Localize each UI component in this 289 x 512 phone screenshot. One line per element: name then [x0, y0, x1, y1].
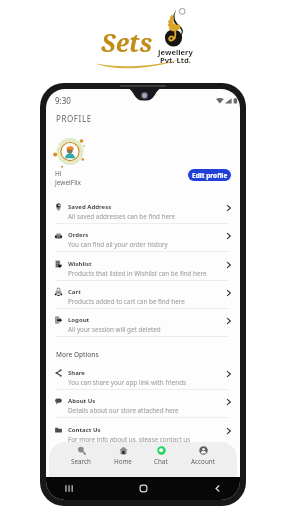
- staticText: Wishlist: [68, 260, 92, 268]
- staticText: Jewellery: [158, 47, 193, 57]
- staticText: Sets: [101, 25, 153, 59]
- button[interactable]: Edit profile: [188, 169, 231, 181]
- button[interactable]: Orders: [46, 227, 240, 255]
- staticText: Cart: [68, 288, 81, 296]
- staticText: JewelFlix: [55, 178, 81, 187]
- button[interactable]: Share: [46, 365, 240, 393]
- staticText: Products that listed in Wishlist can be …: [68, 269, 207, 278]
- staticText: All saved addresses can be find here: [68, 212, 176, 221]
- staticText: 9:30: [55, 95, 71, 106]
- staticText: More Options: [56, 350, 99, 359]
- staticText: Search: [71, 457, 91, 466]
- button[interactable]: Recent apps: [64, 484, 73, 493]
- button[interactable]: Search: [68, 442, 94, 470]
- button[interactable]: Logout: [46, 312, 240, 340]
- button[interactable]: Wishlist: [46, 256, 240, 284]
- staticText: Account: [191, 457, 215, 466]
- button[interactable]: Home: [111, 442, 135, 470]
- button[interactable]: About Us: [46, 393, 240, 421]
- staticText: Share: [68, 369, 85, 377]
- button[interactable]: Home: [139, 484, 148, 493]
- staticText: Hi: [55, 169, 62, 178]
- staticText: You can share your app link with friends: [68, 378, 187, 387]
- staticText: You can find all your order history: [68, 240, 168, 249]
- button[interactable]: Cart: [46, 284, 240, 312]
- staticText: PROFILE: [56, 113, 92, 124]
- staticText: Logout: [68, 316, 90, 324]
- staticText: For more info about us, please contact u…: [68, 435, 191, 444]
- button[interactable]: Back: [213, 484, 222, 493]
- button[interactable]: [46, 450, 240, 478]
- staticText: Home: [114, 457, 132, 466]
- staticText: About Us: [68, 397, 96, 405]
- button[interactable]: Contact Us: [46, 422, 240, 450]
- staticText: Products added to cart can be find here: [68, 297, 185, 306]
- staticText: Details about our store attached here: [68, 406, 179, 415]
- staticText: Chat: [154, 457, 168, 466]
- staticText: Saved Address: [68, 203, 112, 211]
- button[interactable]: Chat: [151, 442, 171, 470]
- button[interactable]: Saved Address: [46, 199, 240, 227]
- staticText: All your session will get deleted: [68, 325, 161, 334]
- staticText: Orders: [68, 231, 89, 239]
- staticText: Edit profile: [192, 171, 228, 180]
- staticText: Pvt. Ltd.: [160, 55, 191, 65]
- staticText: Contact Us: [68, 426, 101, 434]
- button[interactable]: Account: [188, 442, 218, 470]
